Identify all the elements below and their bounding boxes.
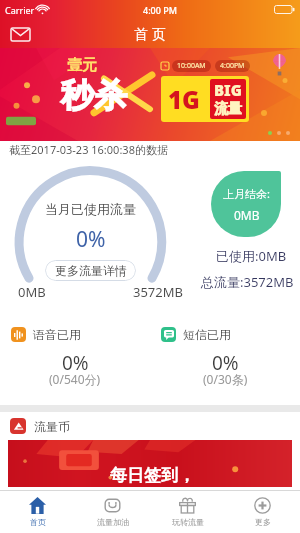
staticText: Carrier <box>5 4 35 16</box>
staticText: 短信已用 <box>183 327 231 342</box>
staticText: 0% <box>212 350 239 376</box>
staticText: 当月已使用流量 <box>45 201 136 217</box>
button[interactable]: Messages <box>6 22 34 46</box>
staticText: 首页 <box>30 517 46 527</box>
staticText: 10:00AM <box>177 61 206 71</box>
staticText: 上月结余: <box>223 186 270 201</box>
staticText: 更多 <box>255 517 271 527</box>
staticText: 壹元 <box>67 56 97 75</box>
button[interactable]: 短信已用 <box>150 319 300 399</box>
button[interactable]: 流量加油 <box>75 491 150 533</box>
staticText: 0MB <box>18 283 46 301</box>
button[interactable]: 更多流量详情 <box>45 260 136 281</box>
staticText: 3572MB <box>133 283 183 301</box>
button[interactable]: 语音已用 <box>0 319 150 399</box>
staticText: 流量 <box>214 100 242 118</box>
staticText: 截至2017-03-23 16:00:38的数据 <box>9 142 168 157</box>
staticText: 已使用:0MB <box>216 247 287 265</box>
staticText: (0/540分) <box>49 371 101 387</box>
button[interactable]: 每日签到， <box>8 440 292 487</box>
staticText: (0/30条) <box>203 371 248 387</box>
button[interactable]: 首页 <box>0 491 75 533</box>
staticText: 更多流量详情 <box>55 263 127 278</box>
staticText: BIG <box>214 80 242 100</box>
staticText: 流量加油 <box>97 517 129 527</box>
staticText: 0% <box>62 350 89 376</box>
staticText: 流量币 <box>34 419 70 434</box>
staticText: 首 页 <box>134 24 166 43</box>
staticText: 总流量:3572MB <box>201 273 294 291</box>
staticText: 1G <box>168 83 200 116</box>
staticText: 4:00PM <box>220 61 245 71</box>
button[interactable]: 玩转流量 <box>150 491 225 533</box>
staticText: 语音已用 <box>33 327 81 342</box>
button[interactable]: 更多 <box>225 491 300 533</box>
staticText: 0MB <box>234 207 260 223</box>
button[interactable]: 流量币 <box>0 412 300 440</box>
staticText: 0% <box>76 225 106 254</box>
staticText: 玩转流量 <box>172 517 204 527</box>
staticText: 秒杀 <box>61 75 127 117</box>
staticText: 4:00 PM <box>143 4 177 16</box>
staticText: 每日签到， <box>110 465 195 486</box>
